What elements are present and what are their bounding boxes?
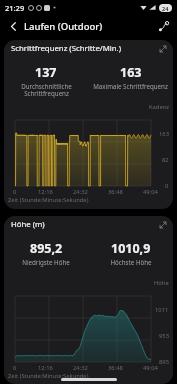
button[interactable]: Route: [154, 17, 172, 35]
staticText: 1011: [155, 306, 169, 314]
staticText: 0: [13, 188, 17, 196]
staticText: 12:16: [38, 364, 53, 372]
staticText: Laufen (Outdoor): [24, 20, 103, 33]
staticText: 0: [165, 182, 169, 190]
staticText: Maximale Schrittfrequenz: [93, 82, 168, 90]
staticText: Kadenz: [149, 103, 169, 111]
button[interactable]: Expand chart: [157, 43, 169, 55]
staticText: 24:32: [73, 364, 88, 372]
staticText: 36:48: [108, 364, 123, 372]
staticText: Zeit (Stunde:Minute:Sekunde): [8, 372, 89, 380]
staticText: 21:29: [5, 3, 25, 13]
staticText: Durchschnittliche Schrittfrequenz: [21, 82, 72, 98]
staticText: 0: [13, 364, 17, 372]
staticText: 36:48: [108, 188, 123, 196]
button[interactable]: Back: [4, 17, 22, 35]
staticText: 953: [159, 332, 169, 340]
staticText: 163: [120, 64, 142, 81]
staticText: 12:16: [38, 188, 53, 196]
staticText: 24:32: [73, 188, 88, 196]
staticText: 895,2: [30, 240, 63, 257]
staticText: 49:04: [143, 188, 158, 196]
staticText: Höchste Höhe: [110, 258, 152, 266]
button[interactable]: Expand chart: [157, 219, 169, 231]
staticText: 24: [162, 5, 169, 12]
button[interactable]: Schrittfrequenz (Schritte/Min.): [4, 40, 173, 209]
staticText: 49:04: [143, 364, 158, 372]
staticText: Schrittfrequenz (Schritte/Min.): [11, 43, 122, 54]
staticText: 137: [35, 64, 57, 81]
staticText: Niedrigste Höhe: [22, 258, 70, 266]
button[interactable]: Höhe (m): [4, 216, 173, 384]
staticText: Höhe: [154, 279, 169, 287]
staticText: Höhe (m): [11, 219, 45, 230]
staticText: Zeit (Stunde:Minute:Sekunde): [8, 196, 89, 204]
staticText: 82: [162, 156, 169, 164]
staticText: 1010,9: [111, 240, 151, 257]
staticText: 163: [159, 130, 169, 138]
staticText: 895: [159, 358, 169, 366]
